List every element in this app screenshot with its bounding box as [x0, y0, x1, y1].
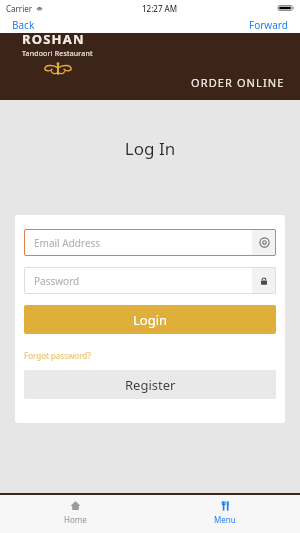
staticText: Forgot password? [24, 350, 91, 361]
staticText: Home [64, 514, 87, 525]
button[interactable]: Login [24, 305, 276, 334]
button[interactable]: Register [24, 370, 276, 399]
staticText: Tandoori Restaurant [22, 49, 93, 59]
staticText: Log In [0, 137, 300, 160]
staticText: Carrier [6, 3, 33, 14]
other: Password [252, 267, 276, 294]
button[interactable]: Home [0, 495, 150, 533]
staticText: ORDER ONLINE [191, 75, 285, 90]
staticText: Register [125, 376, 176, 394]
button[interactable]: Email Address [24, 229, 276, 256]
staticText: Back [12, 18, 35, 31]
staticText: Login [133, 311, 168, 329]
button[interactable]: Forgot password? [24, 349, 91, 362]
button[interactable]: Password [24, 267, 276, 294]
staticText: ROSHAN [22, 30, 85, 48]
button[interactable]: Roshan Tandoori Restaurant home [22, 30, 93, 75]
other: Email [252, 229, 276, 256]
staticText: Menu [214, 514, 236, 525]
button[interactable]: Forward [245, 16, 292, 33]
button[interactable]: Back [8, 16, 39, 33]
staticText: Password [34, 274, 80, 288]
button[interactable]: ORDER ONLINE [188, 73, 288, 92]
staticText: Forward [249, 18, 288, 31]
staticText: Email Address [34, 236, 101, 250]
staticText: 12:27 AM [142, 3, 178, 14]
button[interactable]: Menu [150, 495, 300, 533]
